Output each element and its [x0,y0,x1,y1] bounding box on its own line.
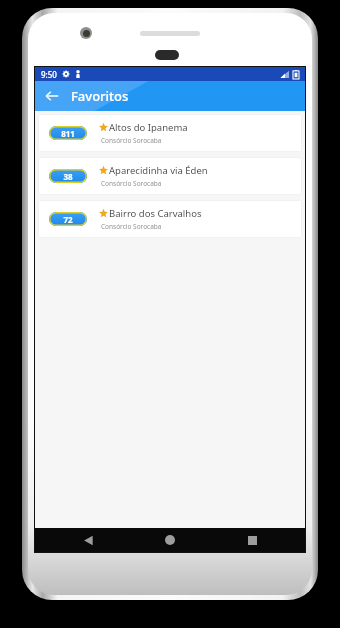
button[interactable]: Back [39,83,65,109]
staticText: 811 [61,128,75,139]
button[interactable]: Back [59,528,117,552]
staticText: Aparecidinha via Éden [109,164,208,177]
staticText: 38 [63,171,73,182]
staticText: Consórcio Sorocaba [101,179,162,188]
staticText: Favoritos [71,87,129,105]
staticText: Consórcio Sorocaba [101,222,162,231]
staticText: Consórcio Sorocaba [101,136,162,145]
button[interactable]: 811 [38,114,302,152]
button[interactable]: Recent apps [223,528,281,552]
button[interactable]: 72 [38,200,302,238]
button[interactable]: Home [141,528,199,552]
button[interactable]: 38 [38,157,302,195]
staticText: 72 [63,214,73,225]
staticText: 9:50 [41,69,57,80]
staticText: Bairro dos Carvalhos [109,207,202,220]
staticText: Altos do Ipanema [109,121,188,134]
